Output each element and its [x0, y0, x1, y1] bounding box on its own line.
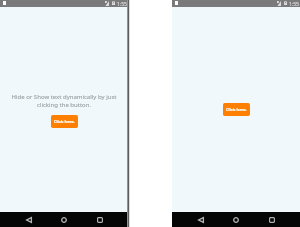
- button[interactable]: Click here.: [51, 115, 78, 128]
- button[interactable]: Home: [229, 213, 243, 227]
- button[interactable]: Recent apps: [93, 213, 107, 227]
- staticText: 1:55: [289, 1, 299, 8]
- staticText: Click here.: [226, 107, 247, 112]
- button[interactable]: Back: [194, 213, 208, 227]
- button[interactable]: Recent apps: [265, 213, 279, 227]
- staticText: 1:55: [117, 1, 127, 8]
- button[interactable]: Click here.: [223, 103, 250, 116]
- staticText: Hide or Show text dynamically by just cl…: [9, 93, 119, 109]
- button[interactable]: Back: [22, 213, 36, 227]
- staticText: Click here.: [54, 119, 75, 124]
- button[interactable]: Home: [57, 213, 71, 227]
